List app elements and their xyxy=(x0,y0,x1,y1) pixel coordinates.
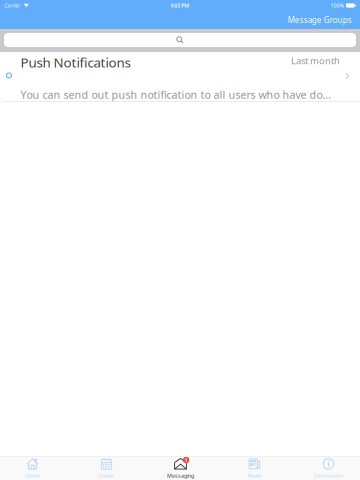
button[interactable]: Message Groups xyxy=(283,12,357,28)
staticText: News xyxy=(247,472,261,479)
button[interactable]: 1 xyxy=(143,454,217,480)
staticText: 100% xyxy=(331,2,344,9)
staticText: 4:03 PM xyxy=(170,2,189,9)
staticText: Home xyxy=(25,472,40,479)
button[interactable] xyxy=(0,29,360,52)
button[interactable]: News xyxy=(217,454,291,480)
button[interactable]: Push Notifications xyxy=(0,52,360,102)
staticText: Dates xyxy=(99,472,114,479)
staticText: Message Groups xyxy=(288,15,352,25)
staticText: Carrier xyxy=(4,2,20,9)
staticText: Last month xyxy=(291,54,340,67)
staticText: You can send out push notification to al… xyxy=(20,87,336,102)
staticText: Messaging xyxy=(167,472,194,479)
staticText: Push Notifications xyxy=(20,53,130,71)
button[interactable]: Information xyxy=(291,454,360,480)
staticText: Information xyxy=(314,472,343,479)
staticText: 1 xyxy=(185,456,188,464)
button[interactable]: Dates xyxy=(69,454,143,480)
button[interactable]: Home xyxy=(0,454,69,480)
